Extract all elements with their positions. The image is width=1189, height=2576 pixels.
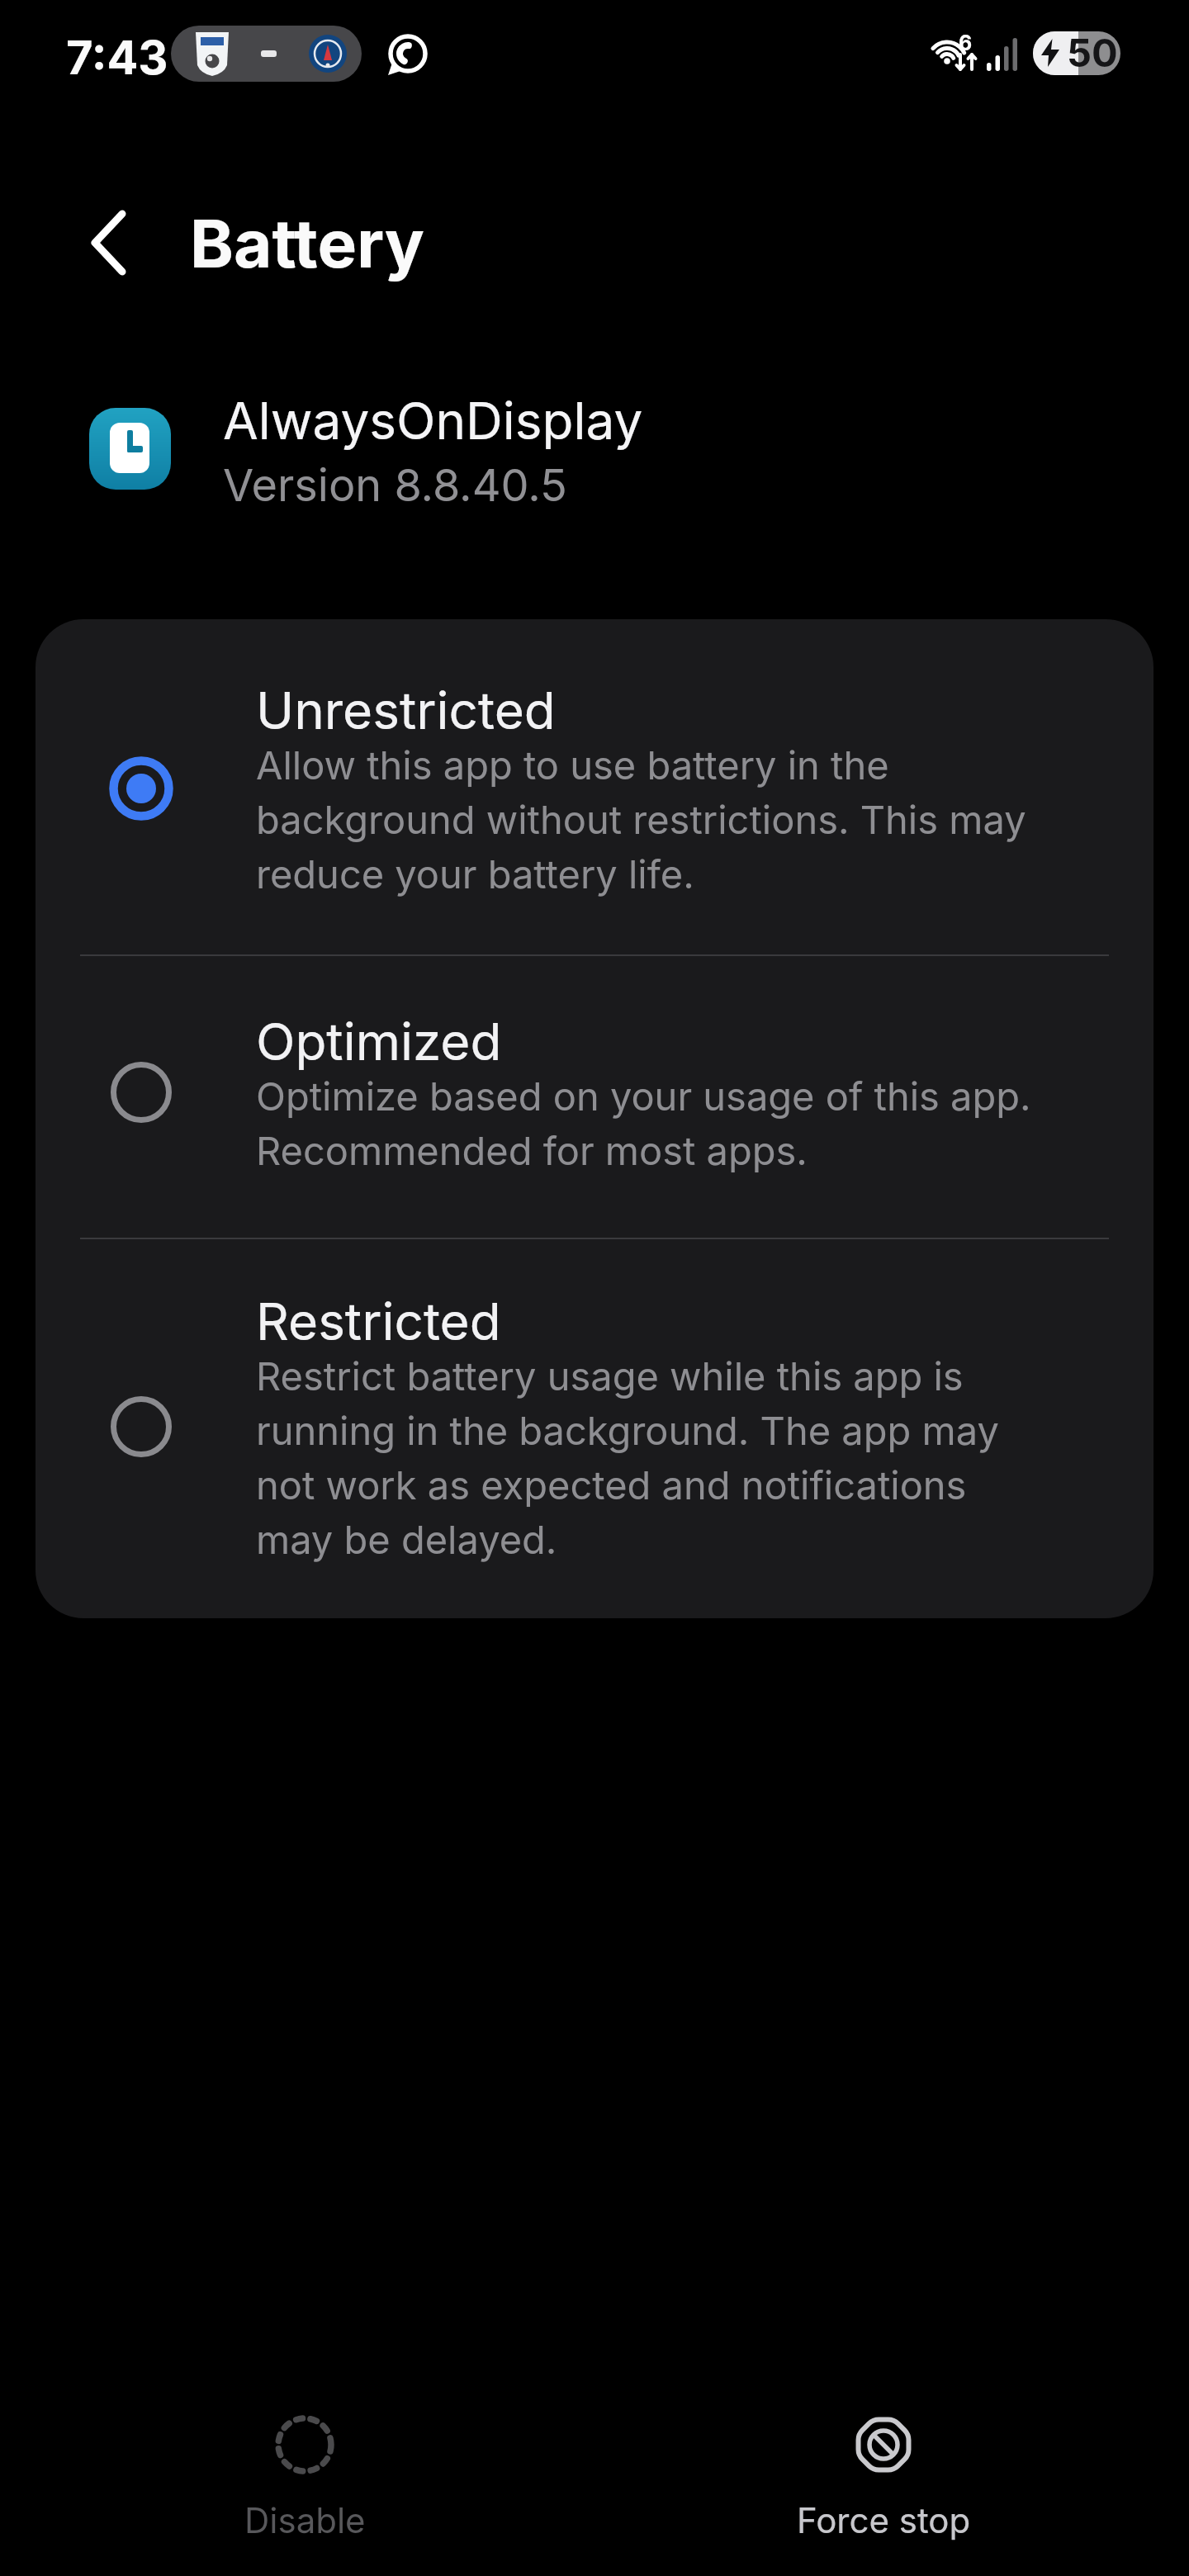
button[interactable]: Optimized [36,1008,1153,1177]
staticText: Battery [190,203,425,283]
staticText: Version 8.8.40.5 [223,458,567,512]
staticText: 6 [959,31,973,55]
button[interactable]: Unrestricted [36,677,1153,900]
staticText: Restricted [256,1290,501,1352]
staticText: Unrestricted [256,680,556,741]
button[interactable] [91,212,126,273]
staticText: AlwaysOnDisplay [223,390,643,452]
staticText: Restrict battery usage while this app is… [256,1352,999,1563]
button[interactable]: Restricted [36,1288,1153,1565]
button[interactable]: Disable [214,2415,396,2541]
staticText: Optimized [256,1011,502,1073]
staticText: Optimize based on your usage of this app… [256,1073,1031,1174]
staticText: Disable [244,2499,366,2541]
staticText: Force stop [797,2499,971,2541]
staticText: Allow this app to use battery in the bac… [256,741,1026,897]
button[interactable]: Force stop [793,2415,974,2541]
staticText: 50 [1067,31,1118,73]
staticText: 7:43 [66,30,168,86]
